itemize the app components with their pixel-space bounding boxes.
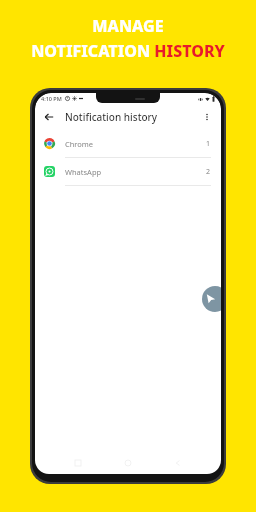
button[interactable]: Scroll to bottom xyxy=(202,286,221,312)
staticText: 4:10 PM xyxy=(41,95,62,102)
staticText: NOTIFICATION HISTORY xyxy=(31,40,225,62)
staticText: WhatsApp xyxy=(65,167,102,177)
staticText: Notification history xyxy=(65,110,158,124)
button[interactable]: Home xyxy=(121,456,135,470)
button[interactable]: More options xyxy=(199,109,215,125)
button[interactable]: Back xyxy=(41,109,57,125)
staticText: Chrome xyxy=(65,139,94,149)
staticText: 1 xyxy=(206,139,211,149)
button[interactable]: Recents xyxy=(71,456,85,470)
button[interactable]: WhatsApp xyxy=(35,158,221,185)
button[interactable]: Chrome xyxy=(35,130,221,157)
staticText: MANAGE xyxy=(92,15,164,37)
staticText: 2 xyxy=(206,167,211,177)
